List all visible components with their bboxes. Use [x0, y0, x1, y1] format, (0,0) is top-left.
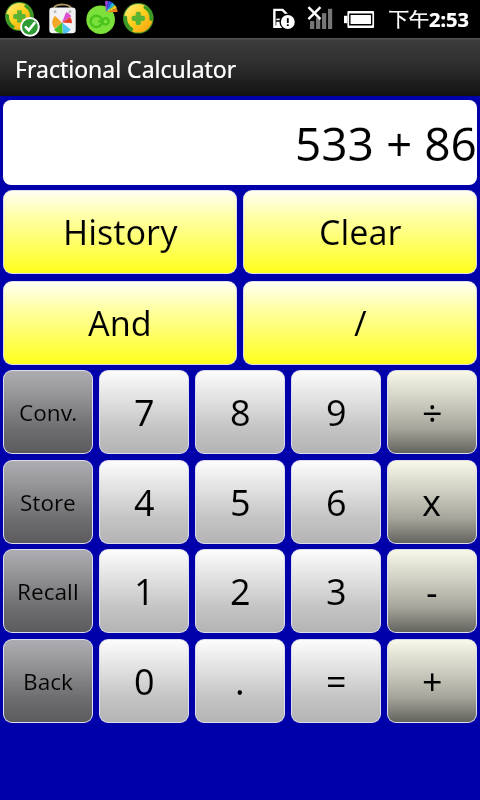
- button[interactable]: And: [4, 282, 236, 364]
- button[interactable]: Store: [4, 461, 92, 543]
- button[interactable]: Conv.: [4, 371, 92, 453]
- button[interactable]: Recall: [4, 550, 92, 632]
- staticText: 9: [326, 388, 347, 437]
- staticText: Recall: [17, 576, 79, 607]
- staticText: =: [326, 657, 347, 706]
- other: Storage warning: [271, 7, 295, 29]
- staticText: 5: [230, 478, 251, 527]
- staticText: 下午: [389, 7, 429, 32]
- button[interactable]: 7: [100, 371, 188, 453]
- staticText: Conv.: [19, 397, 78, 428]
- button[interactable]: =: [292, 640, 380, 722]
- button[interactable]: 3: [292, 550, 380, 632]
- staticText: 3: [326, 567, 347, 616]
- button[interactable]: 8: [196, 371, 284, 453]
- button[interactable]: Back: [4, 640, 92, 722]
- staticText: 2: [230, 567, 251, 616]
- staticText: 2:53: [429, 6, 469, 33]
- button[interactable]: +: [388, 640, 476, 722]
- button[interactable]: 9: [292, 371, 380, 453]
- button[interactable]: 4: [100, 461, 188, 543]
- staticText: Back: [23, 666, 74, 697]
- button[interactable]: /: [244, 282, 476, 364]
- button[interactable]: History: [4, 191, 236, 273]
- staticText: ÷: [422, 388, 443, 437]
- button[interactable]: 533 + 86: [3, 100, 477, 185]
- button[interactable]: 0: [100, 640, 188, 722]
- staticText: /: [354, 300, 367, 346]
- staticText: History: [63, 209, 178, 255]
- button[interactable]: 5: [196, 461, 284, 543]
- staticText: .: [235, 657, 245, 706]
- staticText: 1: [134, 567, 155, 616]
- button[interactable]: -: [388, 550, 476, 632]
- button[interactable]: 1: [100, 550, 188, 632]
- button[interactable]: Clear: [244, 191, 476, 273]
- other: No signal: [308, 7, 334, 29]
- button[interactable]: x: [388, 461, 476, 543]
- staticText: 8: [230, 388, 251, 437]
- button[interactable]: 6: [292, 461, 380, 543]
- staticText: Fractional Calculator: [15, 53, 237, 84]
- staticText: Store: [20, 487, 76, 518]
- staticText: 7: [134, 388, 155, 437]
- staticText: And: [88, 300, 152, 346]
- staticText: -: [426, 567, 438, 616]
- other: Battery full: [344, 9, 375, 30]
- staticText: x: [422, 478, 442, 527]
- button[interactable]: ÷: [388, 371, 476, 453]
- staticText: 4: [134, 478, 155, 527]
- button[interactable]: 2: [196, 550, 284, 632]
- staticText: 6: [326, 478, 347, 527]
- staticText: Clear: [319, 209, 402, 255]
- staticText: 533 + 86: [295, 112, 477, 175]
- button[interactable]: .: [196, 640, 284, 722]
- staticText: 0: [134, 657, 155, 706]
- staticText: +: [422, 657, 443, 706]
